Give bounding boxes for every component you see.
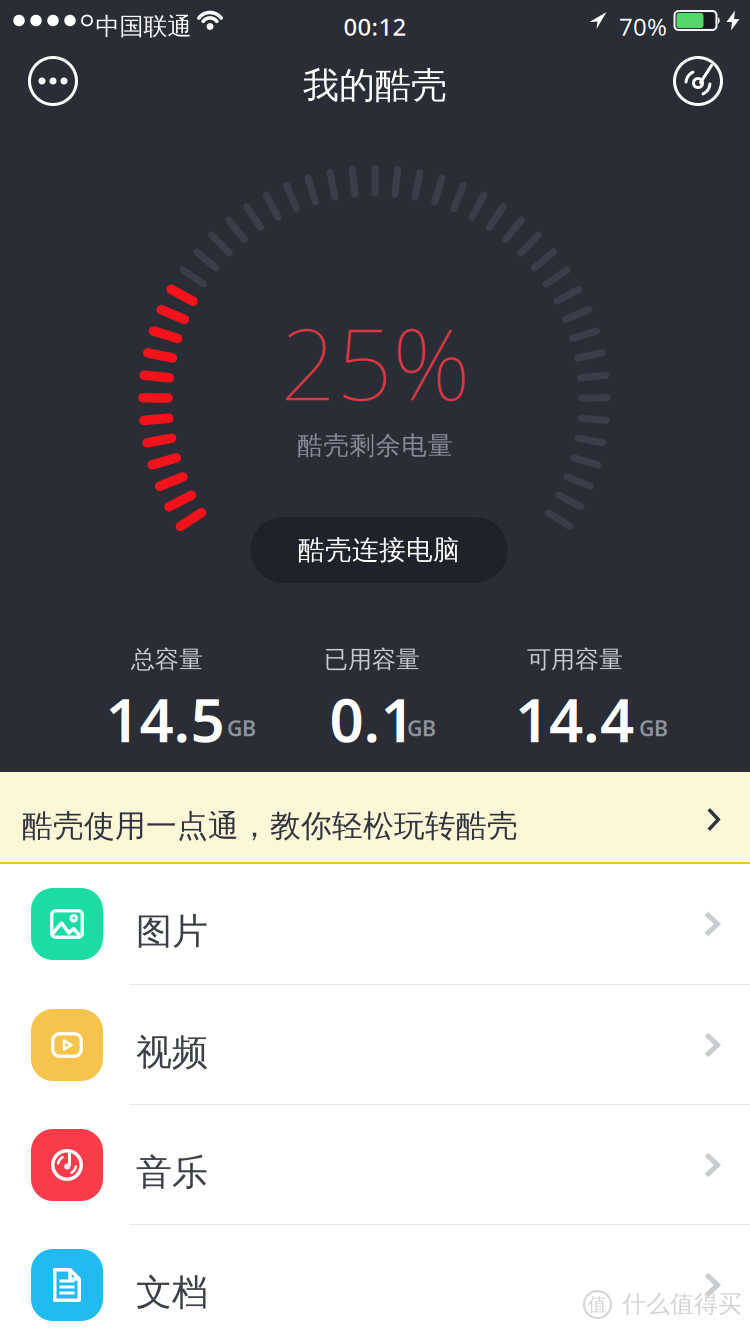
staticText: 25% [280, 296, 470, 427]
button[interactable]: More [28, 56, 78, 106]
staticText: 音乐 [136, 1150, 208, 1195]
button[interactable]: 图片 [0, 864, 750, 985]
staticText: 00:12 [343, 11, 406, 42]
staticText: 酷壳剩余电量 [297, 430, 452, 461]
button[interactable]: 音乐 [0, 1105, 750, 1225]
button[interactable]: 酷壳使用一点通，教你轻松玩转酷壳 [0, 772, 750, 864]
staticText: 视频 [136, 1030, 208, 1075]
button[interactable]: 视频 [0, 985, 750, 1105]
staticText: 70% [619, 11, 667, 42]
staticText: GB [639, 714, 668, 742]
staticText: 酷壳连接电脑 [298, 534, 460, 566]
staticText: GB [407, 714, 436, 742]
staticText: 文档 [136, 1270, 208, 1315]
staticText: GB [227, 714, 256, 742]
staticText: 14.4 [515, 679, 634, 759]
staticText: 已用容量 [324, 645, 420, 674]
staticText: 值 [588, 1293, 607, 1316]
staticText: 0.1 [329, 679, 414, 759]
staticText: 可用容量 [527, 645, 623, 674]
staticText: 中国联通 [95, 12, 191, 41]
button[interactable]: 酷壳连接电脑 [250, 517, 507, 583]
staticText: 酷壳使用一点通，教你轻松玩转酷壳 [22, 807, 518, 845]
staticText: 我的酷壳 [303, 63, 447, 108]
staticText: 14.5 [105, 679, 224, 759]
staticText: 什么值得买 [622, 1289, 742, 1319]
button[interactable]: Speed test [673, 56, 723, 106]
staticText: 总容量 [131, 645, 203, 674]
button[interactable]: 文档 [0, 1225, 750, 1334]
staticText: 图片 [136, 909, 208, 954]
